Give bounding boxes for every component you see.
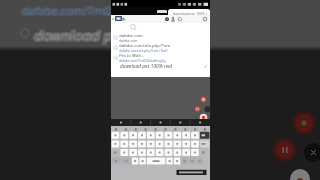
button[interactable]: Tab switcher [115,16,122,21]
staticText: Pes.io Wall... [119,52,145,58]
staticText: dafabe.com/a/a.php?1sm [119,42,171,48]
staticText: dafabe.com/a/a.php?1sm=1bd1 [119,48,169,52]
button[interactable]: dafabe.com [111,32,210,42]
staticText: download p [32,25,111,45]
staticText: download p [32,24,111,44]
button[interactable]: Downloads [170,15,176,23]
staticText: dafabe.com/7ml23 [22,2,120,17]
staticText: dafabe.com/7ml23 [21,3,119,18]
staticText: download p [36,24,115,44]
staticText: dafabe.com/7ml23 [20,2,118,17]
staticText: download p [35,26,114,46]
button[interactable]: Keyboard [111,126,210,180]
staticText: download p [36,25,115,45]
staticText: dafabe.com/7ml23 [20,3,118,18]
staticText: dafabe.com/7ml23 [22,4,120,19]
button[interactable]: Reload [177,15,183,23]
button[interactable]: Pes.io Wall... [111,52,210,62]
staticText: dafabe.com/7ml23 [24,2,122,17]
button[interactable]: Record [290,169,310,180]
staticText: download p [32,26,111,46]
button[interactable]: dafabe.com/a/a.php?1sm [111,42,210,52]
staticText: dafabe.com/7ml23 [20,4,118,19]
staticText: dafabe.com/7ml23 [23,4,121,19]
staticText: download pes 100% r [173,11,208,16]
staticText: dafabe.com [119,38,138,42]
button[interactable]: Settings [164,15,170,23]
button[interactable]: Stop recording [295,114,313,132]
button[interactable]: Back [111,15,115,23]
staticText: dafabe.com/7ml23 [23,2,121,17]
staticText: download p [34,24,113,44]
staticText: dafabe.com [119,32,143,38]
staticText: download p [33,26,112,46]
staticText: dafabe.com/7ml23 [21,2,119,17]
staticText: dafabe.com/7ml23 [24,3,122,18]
button[interactable]: download pes 100% real [111,62,210,71]
button[interactable]: Close [304,143,320,162]
staticText: download p [33,24,112,44]
button[interactable]: Other tab [157,10,167,13]
staticText: dafabe.com/7ml23/okdfrog3g [119,58,166,62]
staticText: download p [35,24,114,44]
button[interactable]: download pes 100% r [168,9,210,17]
staticText: dafabe.com/7ml23 [21,4,119,19]
staticText: download p [33,25,112,45]
staticText: download p [36,26,115,46]
staticText: dafabe.com/7ml23 [22,3,120,18]
staticText: download p [35,25,114,45]
staticText: download p [34,25,113,45]
staticText: dafabe.com/7ml23 [24,4,122,19]
button[interactable]: Account [121,15,126,23]
staticText: dafabe.com/7ml23 [23,3,121,18]
staticText: download pes 100% real [120,63,172,70]
staticText: download p [34,26,113,46]
button[interactable]: Pause recording [276,141,294,159]
button[interactable]: Home [202,15,208,23]
